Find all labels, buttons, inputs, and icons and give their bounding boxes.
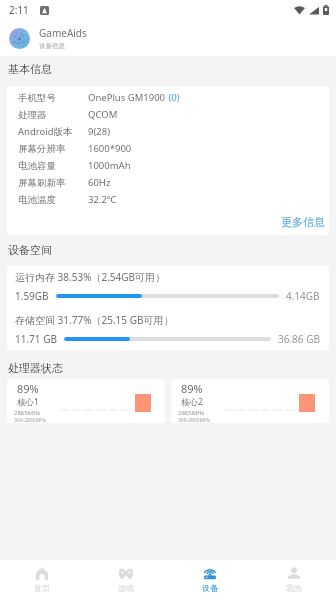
staticText: 运行内存 38.53%（2.54GB可用） [15,270,166,284]
staticText: 处理器状态 [8,361,63,375]
staticText: 屏幕刷新率 [18,177,88,189]
button[interactable]: 我的 [252,560,336,600]
staticText: 存储空间 31.77%（25.15 GB可用） [15,313,174,327]
staticText: 游戏 [118,583,134,593]
staticText: 32.2℃ [88,193,117,206]
staticText: 11.71 GB [15,332,57,346]
staticText: 手机型号 [18,92,88,104]
staticText: 电池容量 [18,160,88,172]
staticText: 设备 [202,583,218,593]
staticText: GameAids [39,26,87,40]
staticText: OnePlus GM1900 [88,91,166,104]
staticText: 89% [17,381,39,396]
staticText: 核心1 [17,396,39,408]
staticText: 设备空间 [8,243,52,257]
staticText: 核心2 [181,396,203,408]
staticText: 2:11 [9,3,29,17]
staticText: 电池温度 [18,194,88,206]
staticText: 1600*900 [88,142,132,155]
staticText: 60Hz [88,176,111,189]
staticText: 我的 [286,583,302,593]
staticText: 1.59GB [15,289,49,303]
staticText: 300-2865MHz [14,417,47,423]
staticText: 4.14GB [286,289,320,303]
staticText: 36.86 GB [278,332,320,346]
staticText: 89% [181,381,203,396]
button[interactable]: 更多信息 [277,210,327,231]
staticText: 处理器 [18,109,88,121]
staticText: QCOM [88,108,118,121]
staticText: 2865MHz [178,409,205,417]
staticText: 9(28) [88,125,111,138]
staticText: 首页 [34,583,50,593]
staticText: (0) [166,91,180,104]
staticText: 1000mAh [88,159,131,172]
staticText: 基本信息 [8,62,52,76]
staticText: Android版本 [18,125,88,138]
staticText: 设备信息 [39,42,65,50]
button[interactable]: 设备 [168,560,252,600]
button[interactable]: 游戏 [84,560,168,600]
staticText: 300-2865MHz [178,417,211,423]
staticText: 2865MHz [14,409,41,417]
staticText: 屏幕分辨率 [18,143,88,155]
button[interactable]: 首页 [0,560,84,600]
